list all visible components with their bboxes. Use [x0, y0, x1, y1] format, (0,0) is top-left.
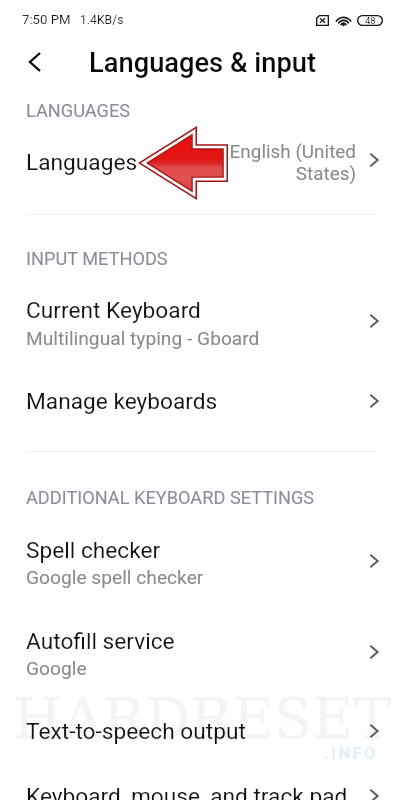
staticText: 48	[365, 15, 376, 26]
staticText: Current Keyboard	[26, 297, 201, 323]
staticText: Manage keyboards	[26, 388, 218, 414]
staticText: Languages & input	[89, 47, 316, 79]
staticText: English (United States)	[226, 140, 356, 184]
staticText: 1.4KB/s	[80, 13, 124, 27]
button[interactable]: Keyboard, mouse, and track pad	[0, 783, 404, 800]
button[interactable]: Current Keyboard	[0, 297, 404, 323]
staticText: Multilingual typing - Gboard	[26, 327, 260, 350]
button[interactable]: Back	[15, 42, 55, 82]
staticText: ADDITIONAL KEYBOARD SETTINGS	[26, 487, 315, 508]
staticText: HARDRESET	[13, 686, 391, 752]
staticText: 7:50 PM	[22, 12, 71, 27]
button[interactable]: Manage keyboards	[0, 388, 404, 414]
staticText: Spell checker	[26, 537, 161, 563]
button[interactable]: Languages	[0, 149, 404, 175]
button[interactable]: Spell checker	[0, 537, 404, 563]
staticText: Languages	[26, 149, 138, 175]
staticText: LANGUAGES	[26, 100, 131, 121]
staticText: Google spell checker	[26, 566, 204, 589]
staticText: Autofill service	[26, 628, 175, 654]
staticText: Text-to-speech output	[26, 718, 246, 744]
staticText: .INFO	[324, 744, 378, 763]
button[interactable]: Autofill service	[0, 628, 404, 654]
staticText: Keyboard, mouse, and track pad	[26, 783, 348, 800]
staticText: Google	[26, 657, 87, 680]
staticText: INPUT METHODS	[26, 248, 168, 269]
button[interactable]: Text-to-speech output	[0, 718, 404, 744]
